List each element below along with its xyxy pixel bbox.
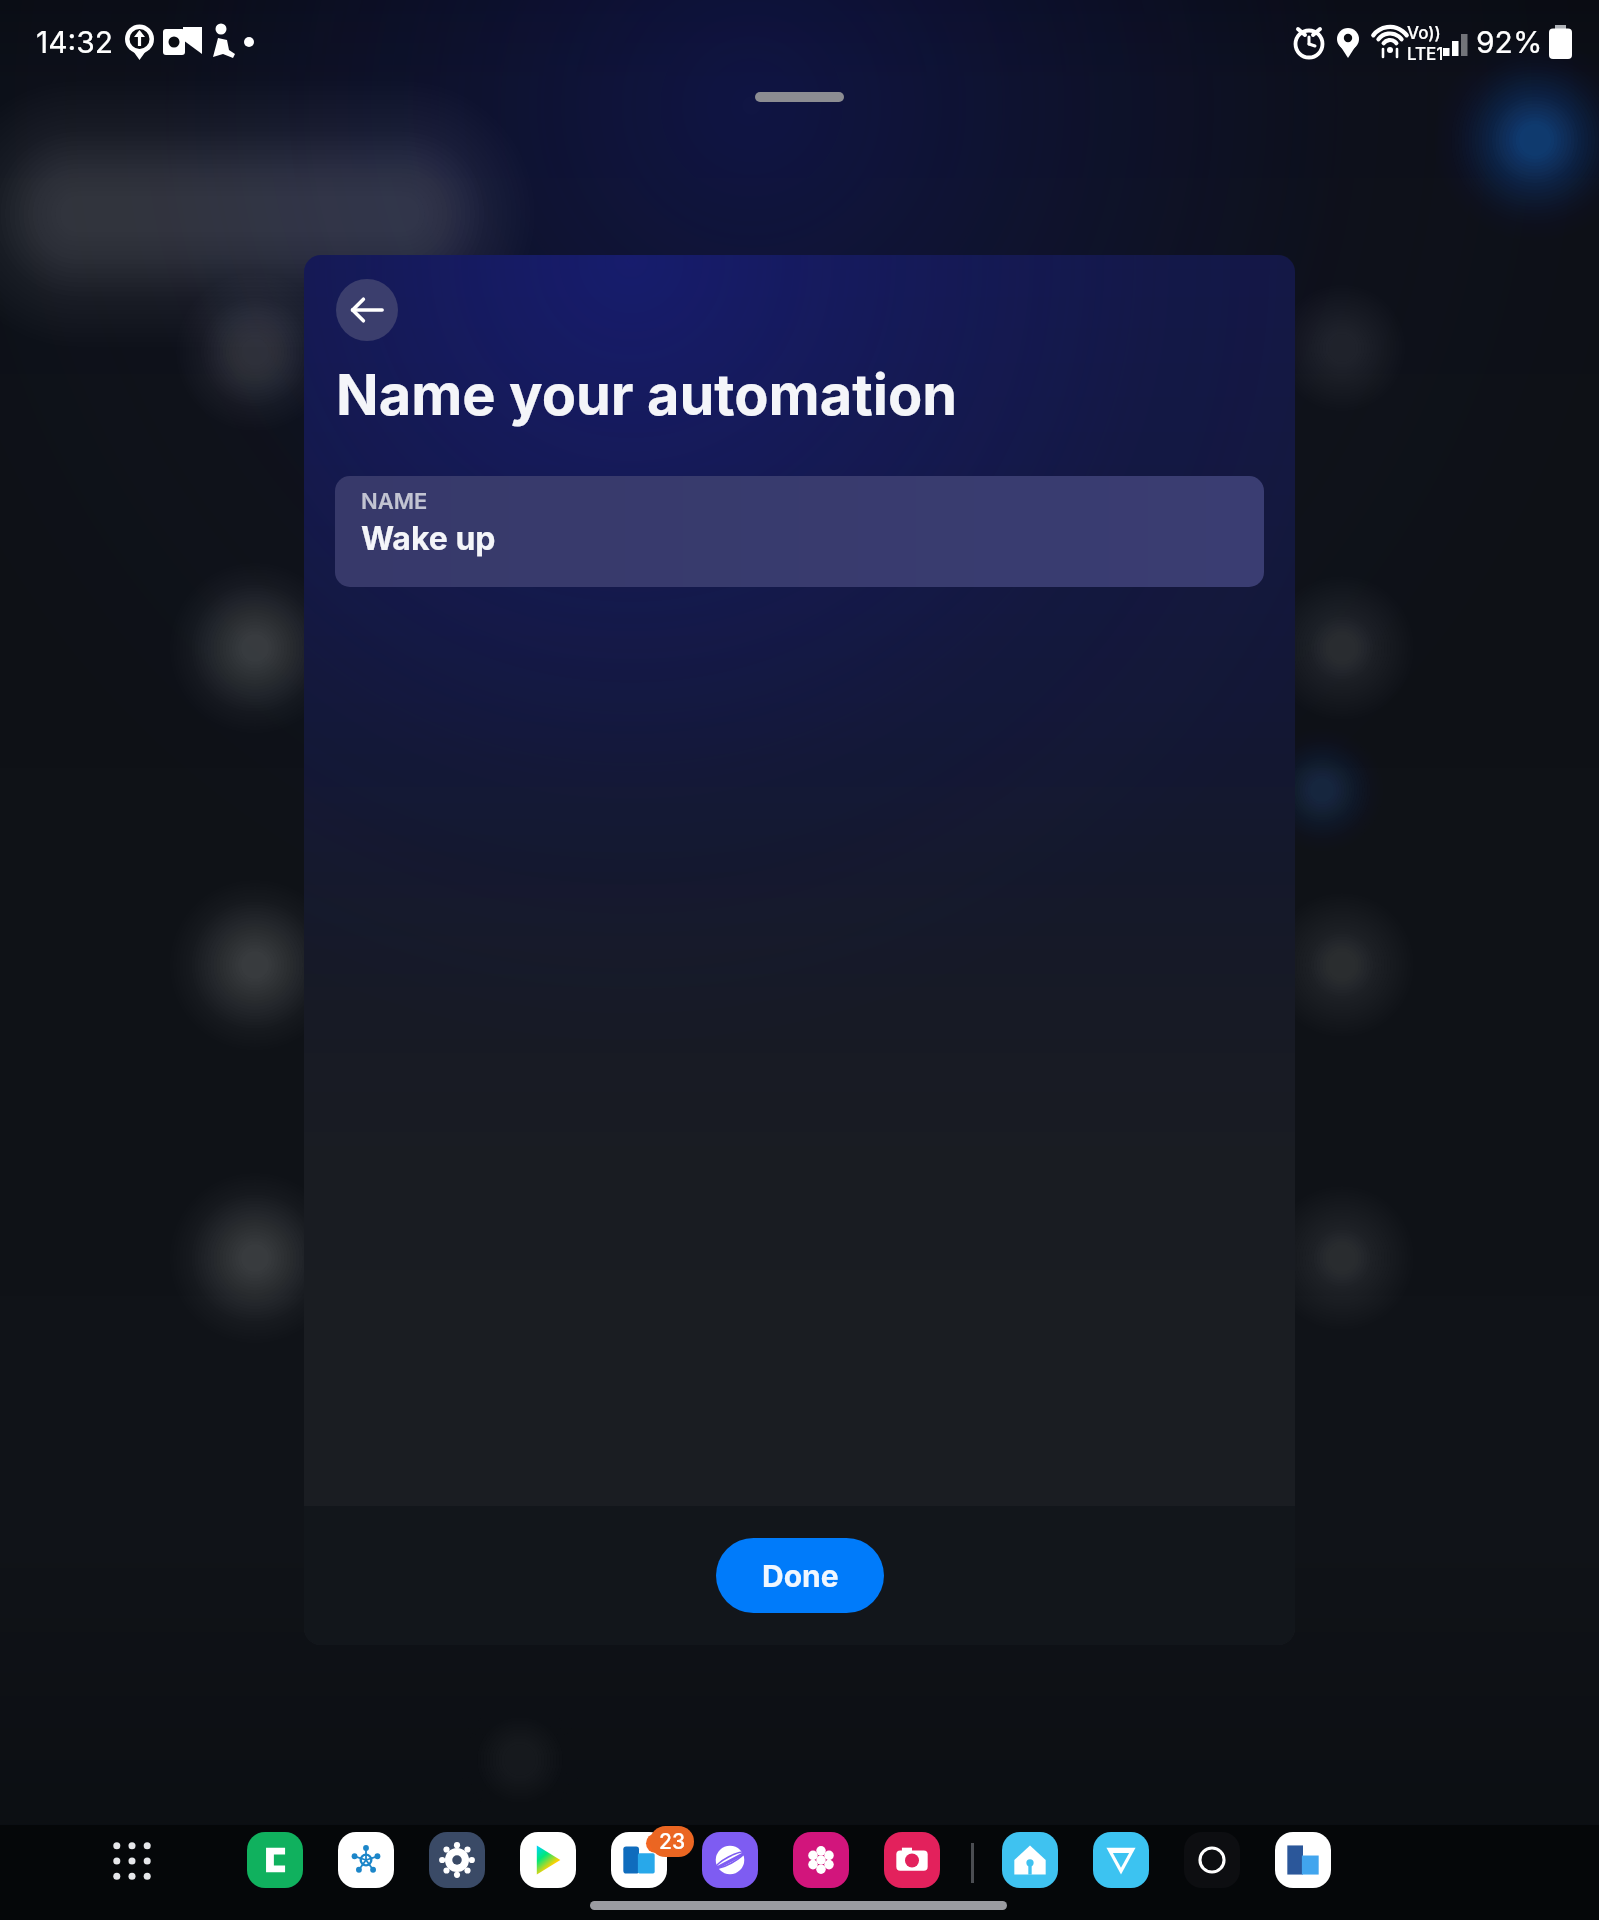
button[interactable]: NAME xyxy=(335,476,1264,587)
button[interactable]: Drive xyxy=(1093,1832,1149,1888)
button[interactable]: Play Store xyxy=(520,1832,576,1888)
staticText: Done xyxy=(762,1558,839,1594)
button[interactable]: Camera xyxy=(884,1832,940,1888)
staticText: Vo)) xyxy=(1407,23,1441,44)
staticText: NAME xyxy=(361,488,428,515)
button[interactable]: Recorder xyxy=(1184,1832,1240,1888)
staticText: 14:32 xyxy=(36,24,114,60)
button[interactable]: SmartThings xyxy=(338,1832,394,1888)
button[interactable]: Apps xyxy=(104,1833,160,1889)
button[interactable]: Gallery xyxy=(793,1832,849,1888)
button[interactable]: Outlook xyxy=(611,1832,667,1888)
button[interactable]: Home xyxy=(1002,1832,1058,1888)
button[interactable]: Word xyxy=(1275,1832,1331,1888)
button[interactable]: Settings xyxy=(429,1832,485,1888)
staticText: 92% xyxy=(1476,24,1543,60)
button[interactable]: Internet xyxy=(702,1832,758,1888)
staticText: 23 xyxy=(659,1829,686,1854)
button[interactable]: Back xyxy=(336,279,398,341)
staticText: LTE1 xyxy=(1407,44,1444,63)
staticText: Name your automation xyxy=(336,361,958,429)
button[interactable]: Done xyxy=(716,1538,884,1613)
button[interactable]: Phone xyxy=(247,1832,303,1888)
staticText: Wake up xyxy=(361,519,496,558)
